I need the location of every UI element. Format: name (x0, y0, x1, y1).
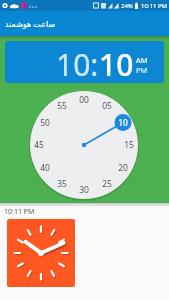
staticText: 10: (56, 44, 99, 83)
button[interactable]: 25 (97, 178, 117, 190)
button[interactable]: ساعت هوشمند (0, 11, 169, 36)
button[interactable]: 40 (35, 162, 55, 174)
staticText: 55 (57, 100, 67, 112)
staticText: 24% (121, 2, 133, 10)
staticText: AM (136, 55, 148, 65)
staticText: PM (136, 65, 148, 75)
button[interactable]: 10 (113, 117, 133, 129)
staticText: 45 (34, 139, 44, 151)
button[interactable]: 50 (35, 117, 55, 129)
button[interactable]: 00 (74, 94, 94, 106)
staticText: 20 (118, 162, 128, 174)
button[interactable]: 05 (97, 100, 117, 112)
staticText: 35 (57, 178, 67, 190)
staticText: 10 (118, 117, 128, 129)
button[interactable]: 35 (52, 178, 72, 190)
staticText: 10:11 PM (141, 2, 167, 10)
button[interactable]: 10: (5, 41, 164, 83)
staticText: 10:11 PM (4, 207, 35, 217)
button[interactable]: 30 (74, 184, 94, 196)
staticText: 30 (79, 184, 89, 196)
staticText: 15 (124, 139, 134, 151)
button[interactable]: 55 (52, 100, 72, 112)
staticText: 00 (79, 94, 89, 106)
button[interactable]: 20 (113, 162, 133, 174)
staticText: 25 (102, 178, 112, 190)
staticText: ساعت هوشمند (5, 18, 56, 29)
staticText: 50 (40, 117, 50, 129)
staticText: 05 (102, 100, 112, 112)
button[interactable]: 15 (119, 139, 139, 151)
staticText: 10 (99, 44, 134, 83)
button[interactable] (7, 219, 75, 287)
button[interactable]: 45 (29, 139, 49, 151)
staticText: 40 (40, 162, 50, 174)
